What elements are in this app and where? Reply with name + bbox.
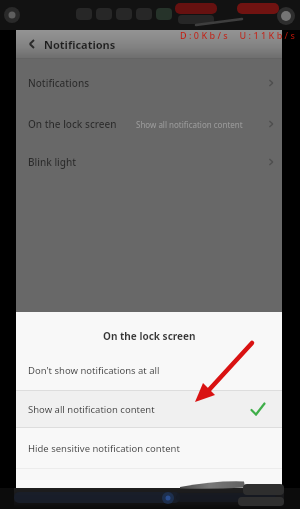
button[interactable]: Don't show notifications at all [16, 357, 282, 383]
staticText: On the lock screen [28, 117, 117, 131]
staticText: Don't show notifications at all [28, 364, 160, 377]
button[interactable]: Notifications [16, 63, 282, 103]
button[interactable]: Show all notification content [16, 391, 282, 427]
button[interactable]: Hide sensitive notification content [16, 428, 282, 468]
staticText: Blink light [28, 155, 77, 169]
staticText: Hide sensitive notification content [28, 442, 180, 455]
button[interactable]: On the lock screen [16, 104, 282, 144]
staticText: Notifications [28, 76, 90, 90]
staticText: D:0Kb/s U:11Kb/s [180, 29, 298, 41]
staticText: On the lock screen [103, 329, 196, 343]
button[interactable]: Notifications [16, 30, 282, 58]
staticText: Notifications [44, 37, 116, 52]
staticText: Show all notification content [28, 403, 155, 416]
button[interactable]: Blink light [16, 142, 282, 182]
staticText: Show all notification content [136, 119, 243, 130]
